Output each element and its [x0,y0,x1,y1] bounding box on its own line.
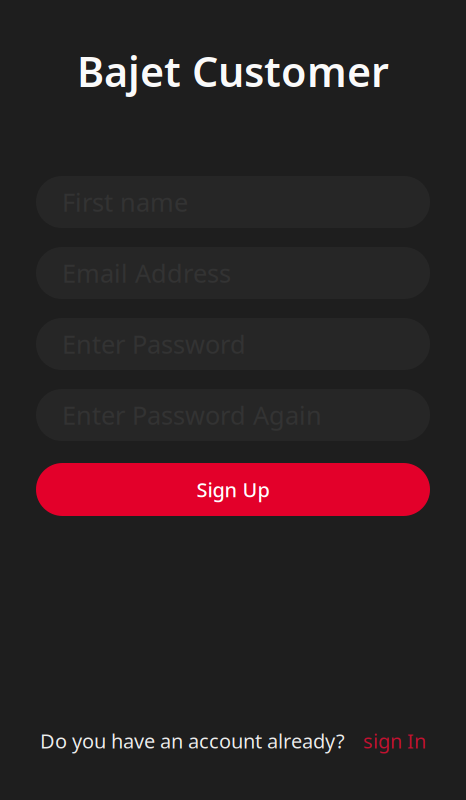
button[interactable]: Sign Up [36,463,430,516]
staticText: Do you have an account already? [40,727,345,754]
staticText: Bajet Customer [77,44,389,98]
staticText: Enter Password Again [62,398,322,432]
staticText: sign In [363,727,426,754]
staticText: Email Address [62,256,231,290]
staticText: Sign Up [196,476,269,503]
button[interactable]: sign In [363,727,426,754]
staticText: First name [62,185,188,219]
staticText: Enter Password [62,327,246,361]
button[interactable]: Enter Password Again [36,389,430,441]
